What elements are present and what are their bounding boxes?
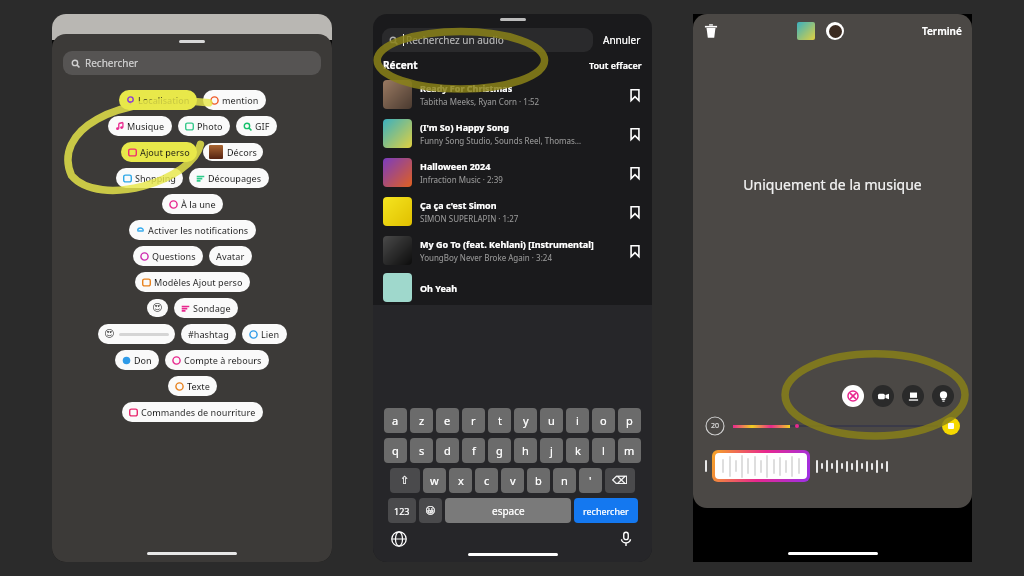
button[interactable]: '	[579, 468, 602, 493]
button[interactable]: Enregistrer	[628, 88, 642, 102]
button[interactable]: Halloween 2024	[373, 153, 652, 192]
staticText: À la une	[181, 198, 216, 210]
button[interactable]: v	[501, 468, 524, 493]
button[interactable]: Ça ça c'est Simon	[373, 192, 652, 231]
button[interactable]: u	[540, 408, 563, 433]
button[interactable]: Sélection audio	[715, 453, 807, 479]
staticText: b	[535, 473, 542, 488]
button[interactable]: c	[475, 468, 498, 493]
button[interactable]: À la une	[162, 194, 223, 214]
button[interactable]: Luminosité	[932, 385, 954, 407]
button[interactable]: m	[618, 438, 641, 463]
button[interactable]: 123	[388, 498, 416, 523]
button[interactable]: Tout effacer	[589, 59, 642, 71]
button[interactable]: espace	[445, 498, 571, 523]
button[interactable]: rechercher	[574, 498, 638, 523]
button[interactable]: w	[423, 468, 446, 493]
staticText: y	[523, 413, 529, 428]
button[interactable]: 20	[705, 416, 725, 436]
button[interactable]: ⌫	[605, 468, 635, 493]
button[interactable]: x	[449, 468, 472, 493]
button[interactable]: 😍	[98, 324, 175, 344]
button[interactable]: Vidéo	[872, 385, 894, 407]
button[interactable]: e	[436, 408, 459, 433]
button[interactable]: f	[462, 438, 485, 463]
button[interactable]: GIF	[236, 116, 277, 136]
button[interactable]: Audio	[797, 22, 815, 40]
button[interactable]: Compte à rebours	[165, 350, 269, 370]
button[interactable]: Questions	[133, 246, 203, 266]
staticText: x	[458, 473, 464, 488]
button[interactable]: Recherchez un audio	[382, 28, 593, 52]
staticText: espace	[492, 504, 525, 518]
button[interactable]: Sondage	[174, 298, 238, 318]
button[interactable]: Texte	[902, 385, 924, 407]
button[interactable]: z	[410, 408, 433, 433]
button[interactable]: Enregistrer	[628, 166, 642, 180]
button[interactable]: Activer les notifications	[129, 220, 256, 240]
button[interactable]: q	[384, 438, 407, 463]
button[interactable]: Rechercher	[63, 51, 321, 75]
button[interactable]: Micro	[618, 531, 634, 547]
button[interactable]: Photo	[178, 116, 230, 136]
button[interactable]: g	[488, 438, 511, 463]
button[interactable]: 😍	[147, 299, 168, 317]
staticText: Commandes de nourriture	[141, 406, 256, 418]
staticText: i	[576, 413, 579, 428]
button[interactable]: Langue	[391, 531, 407, 547]
button[interactable]: s	[410, 438, 433, 463]
staticText: Sondage	[193, 302, 231, 314]
button[interactable]: Avatar	[209, 246, 252, 266]
button[interactable]: t	[488, 408, 511, 433]
staticText: Questions	[152, 250, 196, 262]
button[interactable]: n	[553, 468, 576, 493]
button[interactable]: Enregistrer	[628, 244, 642, 258]
button[interactable]: Décors	[203, 143, 263, 161]
button[interactable]: a	[384, 408, 407, 433]
button[interactable]: Effets	[842, 385, 864, 407]
button[interactable]: Supprimer	[703, 23, 719, 39]
button[interactable]: Lecture	[942, 417, 960, 435]
button[interactable]: l	[592, 438, 615, 463]
button[interactable]: Profil	[826, 22, 844, 40]
button[interactable]: b	[527, 468, 550, 493]
staticText: Ready For Christmas	[420, 82, 513, 94]
button[interactable]: (I'm So) Happy Song	[373, 114, 652, 153]
button[interactable]: r	[462, 408, 485, 433]
button[interactable]: j	[540, 438, 563, 463]
button[interactable]: Texte	[168, 376, 217, 396]
button[interactable]: Enregistrer	[628, 127, 642, 141]
button[interactable]: i	[566, 408, 589, 433]
button[interactable]: mention	[203, 90, 266, 110]
button[interactable]: Découpages	[189, 168, 269, 188]
button[interactable]: p	[618, 408, 641, 433]
staticText: Terminé	[922, 24, 962, 38]
button[interactable]: Ready For Christmas	[373, 75, 652, 114]
button[interactable]: Annuler	[601, 31, 643, 49]
button[interactable]: My Go To (feat. Kehlani) [Instrumental]	[373, 231, 652, 270]
staticText: k	[575, 443, 581, 458]
staticText: Recherchez un audio	[406, 33, 504, 47]
button[interactable]: Shopping	[116, 168, 183, 188]
staticText: Ça ça c'est Simon	[420, 199, 497, 211]
button[interactable]: 😀	[419, 498, 442, 523]
button[interactable]: Enregistrer	[628, 205, 642, 219]
button[interactable]: k	[566, 438, 589, 463]
staticText: Activer les notifications	[148, 224, 249, 236]
button[interactable]: Don	[115, 350, 159, 370]
button[interactable]: Localisation	[119, 90, 197, 110]
staticText: Funny Song Studio, Sounds Reel, Thomas…	[420, 135, 582, 146]
button[interactable]: o	[592, 408, 615, 433]
button[interactable]: Ajout perso	[121, 142, 197, 162]
button[interactable]: Modèles Ajout perso	[135, 272, 250, 292]
button[interactable]: d	[436, 438, 459, 463]
button[interactable]: Commandes de nourriture	[122, 402, 263, 422]
staticText: 20	[711, 421, 720, 431]
button[interactable]: ⇧	[390, 468, 420, 493]
button[interactable]: Terminé	[922, 24, 962, 38]
button[interactable]: y	[514, 408, 537, 433]
button[interactable]: Musique	[108, 116, 172, 136]
button[interactable]: #hashtag	[181, 324, 236, 344]
button[interactable]: h	[514, 438, 537, 463]
button[interactable]: Lien	[242, 324, 287, 344]
